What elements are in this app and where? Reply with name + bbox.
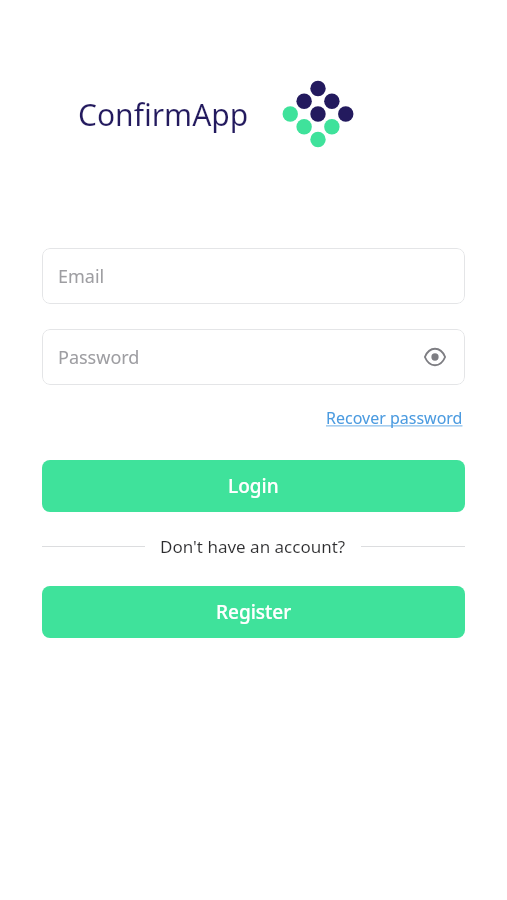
button[interactable]: Show password: [419, 341, 451, 373]
button[interactable]: Email: [42, 248, 465, 304]
button[interactable]: Recover password: [324, 403, 465, 433]
staticText: Login: [228, 473, 279, 499]
staticText: ConfirmApp: [78, 94, 249, 135]
button[interactable]: Register: [42, 586, 465, 638]
staticText: Don't have an account?: [160, 535, 346, 558]
button[interactable]: Password: [42, 329, 465, 385]
staticText: Recover password: [326, 407, 463, 429]
staticText: Password: [58, 345, 140, 370]
staticText: Register: [216, 599, 292, 625]
staticText: Email: [58, 264, 105, 289]
button[interactable]: Login: [42, 460, 465, 512]
